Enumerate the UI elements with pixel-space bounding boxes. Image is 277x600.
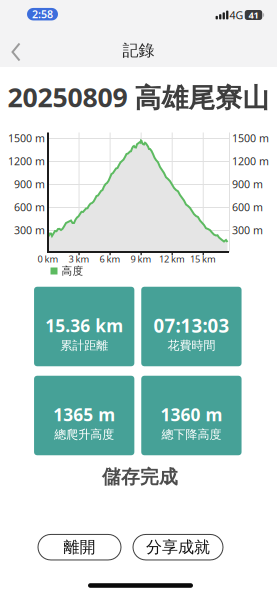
- staticText: 1500 m: [8, 131, 45, 145]
- staticText: 1360 m: [160, 403, 222, 426]
- staticText: 總爬升高度: [54, 427, 114, 442]
- staticText: 9 km: [130, 253, 151, 265]
- button[interactable]: 離開: [38, 534, 121, 560]
- staticText: 12 km: [159, 253, 185, 265]
- staticText: 分享成就: [146, 537, 210, 557]
- staticText: 900 m: [232, 177, 263, 191]
- staticText: 記錄: [122, 41, 154, 60]
- staticText: 累計距離: [60, 338, 108, 353]
- staticText: 6 km: [99, 253, 120, 265]
- button[interactable]: Back: [6, 41, 26, 63]
- staticText: 離開: [63, 537, 95, 557]
- staticText: 300 m: [14, 223, 45, 237]
- staticText: 花費時間: [167, 338, 215, 353]
- staticText: 0 km: [37, 253, 58, 265]
- staticText: 總下降高度: [161, 427, 221, 442]
- staticText: 20250809 高雄尾寮山: [7, 79, 269, 115]
- button[interactable]: Location in use — 2:58: [27, 7, 58, 21]
- staticText: 高度: [61, 264, 83, 277]
- staticText: 600 m: [14, 200, 45, 214]
- staticText: 4G: [229, 8, 243, 22]
- staticText: 2:58: [32, 7, 53, 21]
- staticText: 07:13:03: [153, 313, 229, 338]
- staticText: 600 m: [232, 200, 263, 214]
- staticText: 儲存完成: [102, 465, 178, 488]
- staticText: 41: [248, 9, 258, 21]
- staticText: 300 m: [232, 223, 263, 237]
- staticText: 15.36 km: [45, 314, 123, 337]
- staticText: 15 km: [190, 253, 216, 265]
- button[interactable]: 分享成就: [133, 534, 223, 560]
- staticText: 900 m: [14, 177, 45, 191]
- staticText: 1365 m: [53, 403, 115, 426]
- staticText: 1200 m: [8, 154, 45, 168]
- staticText: 3 km: [68, 253, 89, 265]
- staticText: 1500 m: [232, 131, 269, 145]
- staticText: 1200 m: [232, 154, 269, 168]
